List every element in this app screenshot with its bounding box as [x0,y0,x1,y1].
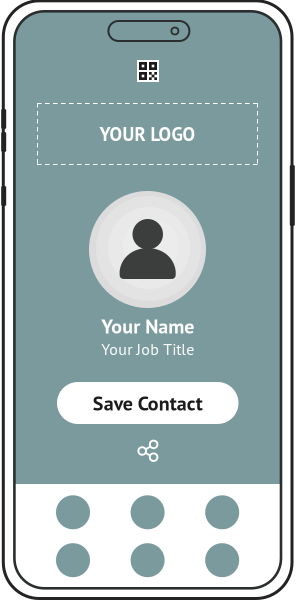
button[interactable]: Share [136,439,160,463]
staticText: Save Contact [93,390,203,416]
button[interactable]: YOUR LOGO [37,103,258,165]
button[interactable]: Contact option 2 [131,495,165,529]
staticText: Your Job Title [101,339,194,359]
button[interactable]: Show QR code [137,60,159,82]
button[interactable]: Contact option 1 [56,495,90,529]
staticText: Your Name [101,313,194,339]
button[interactable]: Contact option 6 [205,543,239,577]
button[interactable]: Contact option 3 [205,495,239,529]
button[interactable]: Contact option 4 [56,543,90,577]
button[interactable]: Contact option 5 [131,543,165,577]
staticText: YOUR LOGO [99,122,195,146]
button[interactable]: Save Contact [57,382,238,424]
